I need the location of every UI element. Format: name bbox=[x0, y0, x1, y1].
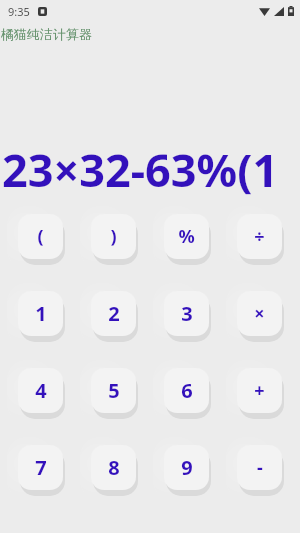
staticText: 7 bbox=[35, 454, 47, 481]
button[interactable]: 8 bbox=[91, 445, 136, 490]
staticText: 9 bbox=[181, 454, 193, 481]
staticText: 1 bbox=[35, 300, 47, 327]
staticText: × bbox=[254, 301, 265, 326]
staticText: - bbox=[257, 455, 263, 480]
button[interactable]: 9 bbox=[164, 445, 209, 490]
staticText: ( bbox=[37, 224, 44, 249]
staticText: ÷ bbox=[254, 224, 265, 249]
button[interactable]: - bbox=[237, 445, 282, 490]
button[interactable]: × bbox=[237, 291, 282, 336]
button[interactable]: 1 bbox=[18, 291, 63, 336]
staticText: 4 bbox=[35, 377, 47, 404]
button[interactable]: 3 bbox=[164, 291, 209, 336]
button[interactable]: 7 bbox=[18, 445, 63, 490]
staticText: 6 bbox=[181, 377, 193, 404]
button[interactable]: % bbox=[164, 214, 209, 259]
button[interactable]: 2 bbox=[91, 291, 136, 336]
button[interactable]: 5 bbox=[91, 368, 136, 413]
staticText: 橘猫纯洁计算器 bbox=[1, 26, 92, 42]
button[interactable]: ) bbox=[91, 214, 136, 259]
staticText: 23×32-63%(1 bbox=[2, 139, 300, 200]
staticText: % bbox=[178, 224, 195, 249]
button[interactable]: 6 bbox=[164, 368, 209, 413]
button[interactable]: 4 bbox=[18, 368, 63, 413]
button[interactable]: + bbox=[237, 368, 282, 413]
button[interactable]: ( bbox=[18, 214, 63, 259]
staticText: 8 bbox=[108, 454, 120, 481]
staticText: 2 bbox=[108, 300, 120, 327]
staticText: + bbox=[254, 378, 265, 403]
button[interactable]: ÷ bbox=[237, 214, 282, 259]
staticText: ) bbox=[110, 224, 117, 249]
staticText: 3 bbox=[181, 300, 193, 327]
staticText: 5 bbox=[108, 377, 120, 404]
staticText: 9:35 bbox=[8, 4, 30, 19]
